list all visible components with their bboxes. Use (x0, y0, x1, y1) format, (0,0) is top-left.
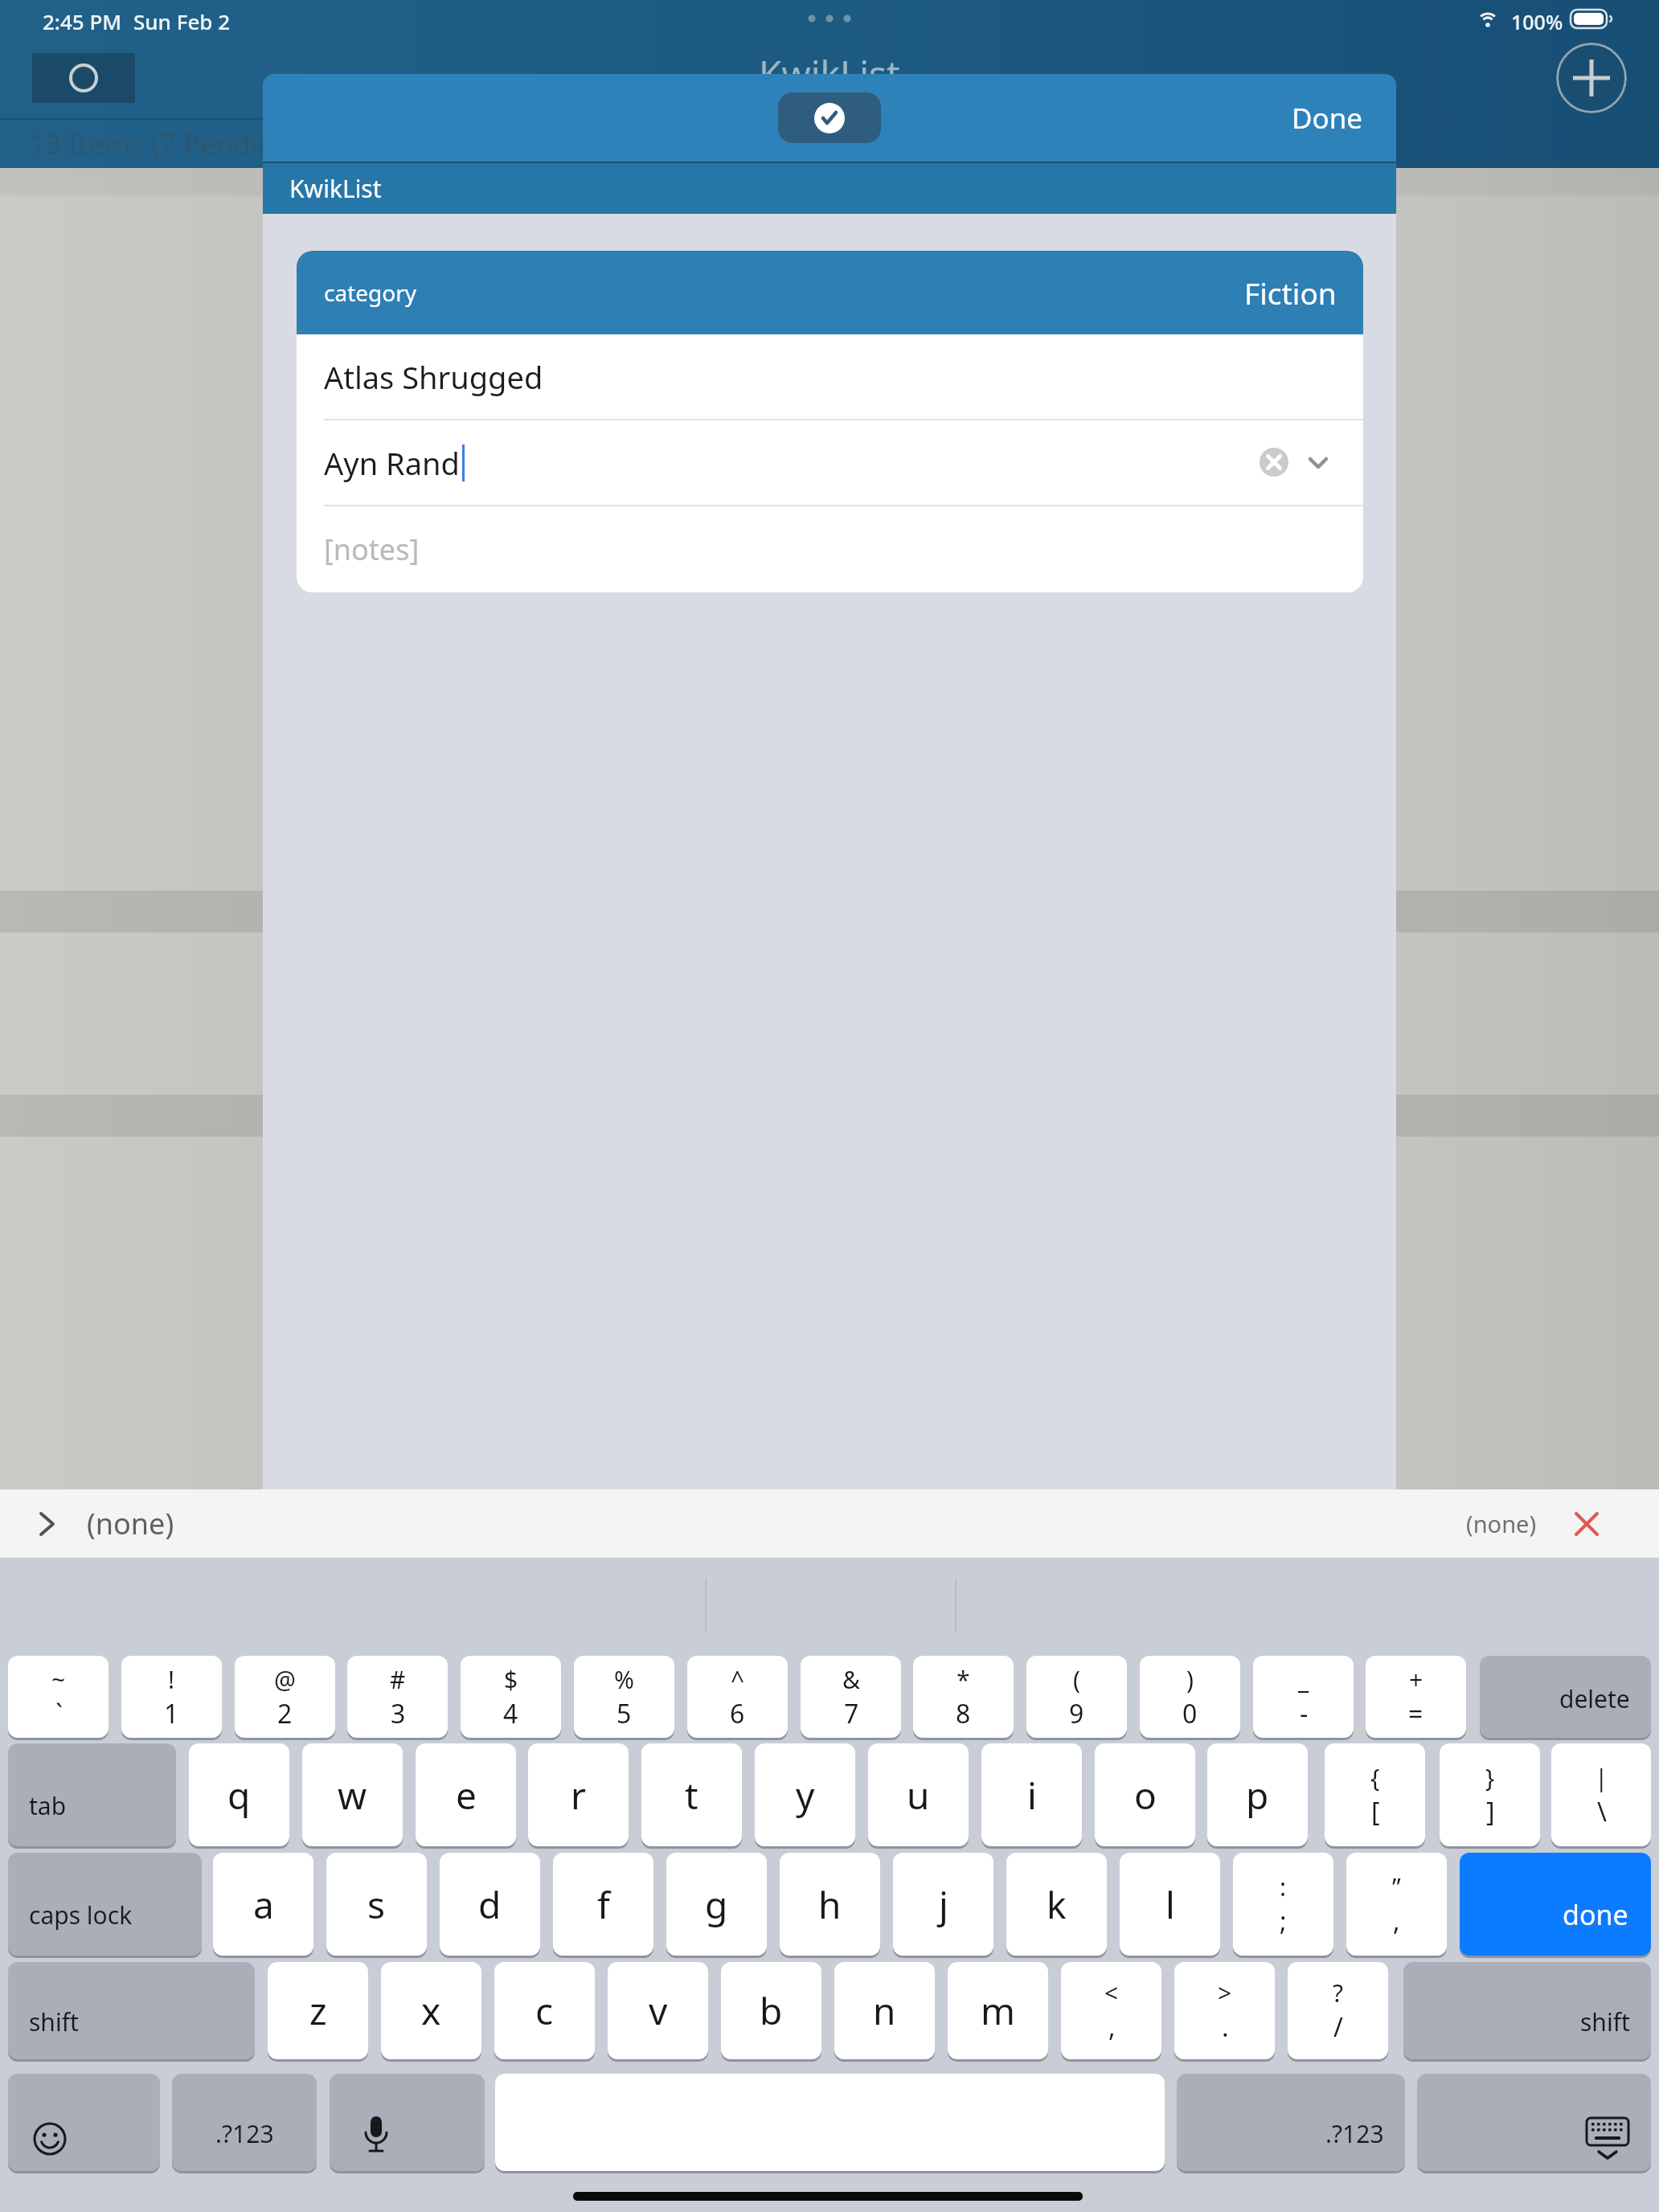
staticText: Fiction (1244, 272, 1337, 313)
staticText: | (1595, 1761, 1608, 1794)
staticText: % (614, 1663, 634, 1696)
staticText: 9 (1069, 1696, 1084, 1731)
button[interactable]: g (666, 1853, 767, 1956)
staticText: KwikList (289, 172, 382, 205)
button[interactable]: Ayn Rand (297, 420, 1363, 505)
button[interactable]: delete (1480, 1656, 1651, 1738)
button[interactable]: k (1006, 1853, 1107, 1956)
button[interactable]: m (948, 1962, 1048, 2059)
button[interactable]: b (721, 1962, 821, 2059)
button[interactable]: @ (235, 1656, 335, 1738)
button[interactable]: ” (1346, 1853, 1447, 1956)
staticText: [notes] (324, 530, 420, 569)
button[interactable] (330, 2074, 485, 2171)
button[interactable]: .?123 (1177, 2074, 1405, 2171)
button[interactable] (1571, 1508, 1603, 1540)
button[interactable]: + (1366, 1656, 1466, 1738)
button[interactable]: [notes] (297, 506, 1363, 592)
staticText: tab (29, 1789, 67, 1822)
button[interactable]: f (553, 1853, 653, 1956)
staticText: p (1246, 1770, 1269, 1821)
button[interactable]: _ (1253, 1656, 1354, 1738)
staticText: v (649, 1985, 668, 2036)
button[interactable]: d (440, 1853, 540, 1956)
button[interactable]: j (893, 1853, 993, 1956)
button[interactable]: y (755, 1743, 855, 1846)
staticText: ; (1280, 1903, 1287, 1939)
button[interactable]: ~ (8, 1656, 109, 1738)
staticText: , (1108, 2009, 1116, 2045)
button[interactable]: t (641, 1743, 742, 1846)
button[interactable]: o (1095, 1743, 1195, 1846)
button[interactable]: n (834, 1962, 935, 2059)
button[interactable]: { (1325, 1743, 1425, 1846)
staticText: 7 (844, 1696, 859, 1731)
button[interactable]: .?123 (172, 2074, 317, 2171)
button[interactable] (32, 53, 135, 103)
staticText: 2 (277, 1696, 293, 1731)
button[interactable]: $ (461, 1656, 561, 1738)
staticText: 3 (391, 1696, 406, 1731)
button[interactable]: caps lock (8, 1853, 202, 1956)
staticText: u (907, 1770, 930, 1821)
staticText: # (390, 1663, 406, 1696)
button[interactable]: Done (1292, 99, 1363, 137)
button[interactable] (8, 2074, 160, 2171)
staticText: shift (1580, 2005, 1630, 2038)
button[interactable]: r (528, 1743, 629, 1846)
button[interactable]: c (494, 1962, 595, 2059)
button[interactable]: p (1207, 1743, 1308, 1846)
button[interactable]: x (381, 1962, 481, 2059)
button[interactable]: w (302, 1743, 403, 1846)
button[interactable]: } (1440, 1743, 1540, 1846)
button[interactable]: < (1061, 1962, 1161, 2059)
button[interactable]: Atlas Shrugged (297, 334, 1363, 419)
button[interactable]: s (326, 1853, 427, 1956)
button[interactable]: | (1551, 1743, 1651, 1846)
button[interactable]: ) (1140, 1656, 1240, 1738)
staticText: Done (1292, 99, 1363, 137)
button[interactable]: shift (8, 1962, 255, 2059)
button[interactable]: q (189, 1743, 289, 1846)
button[interactable]: i (981, 1743, 1082, 1846)
button[interactable]: ( (1026, 1656, 1127, 1738)
button[interactable]: done (1460, 1853, 1651, 1956)
button[interactable] (1556, 43, 1627, 113)
staticText: caps lock (29, 1899, 133, 1931)
button[interactable]: a (213, 1853, 313, 1956)
button[interactable]: * (913, 1656, 1014, 1738)
button[interactable]: category (297, 251, 1363, 334)
staticText: b (760, 1985, 783, 2036)
button[interactable]: l (1120, 1853, 1220, 1956)
staticText: - (1300, 1696, 1309, 1731)
button[interactable]: z (268, 1962, 368, 2059)
button[interactable]: ? (1288, 1962, 1388, 2059)
button[interactable] (1417, 2074, 1651, 2171)
staticText: .?123 (1325, 2117, 1384, 2150)
button[interactable]: ! (121, 1656, 222, 1738)
button[interactable]: & (801, 1656, 901, 1738)
button[interactable]: # (347, 1656, 448, 1738)
button[interactable]: ^ (687, 1656, 788, 1738)
button[interactable]: e (416, 1743, 516, 1846)
button[interactable]: shift (1403, 1962, 1651, 2059)
button[interactable]: tab (8, 1743, 176, 1846)
button[interactable]: h (780, 1853, 880, 1956)
staticText: . (1222, 2009, 1229, 2045)
staticText: KwikList (759, 48, 900, 99)
button[interactable]: > (1174, 1962, 1275, 2059)
staticText: 8 (956, 1696, 971, 1731)
staticText: } (1485, 1761, 1495, 1794)
staticText: > (1218, 1976, 1232, 2009)
button[interactable]: v (608, 1962, 708, 2059)
staticText: i (1027, 1770, 1037, 1821)
staticText: l (1165, 1879, 1175, 1930)
staticText: f (597, 1879, 610, 1930)
button[interactable]: % (574, 1656, 674, 1738)
staticText: t (685, 1770, 698, 1821)
button[interactable]: : (1233, 1853, 1333, 1956)
button[interactable]: u (868, 1743, 969, 1846)
staticText: x (421, 1985, 441, 2036)
button[interactable] (778, 92, 881, 143)
